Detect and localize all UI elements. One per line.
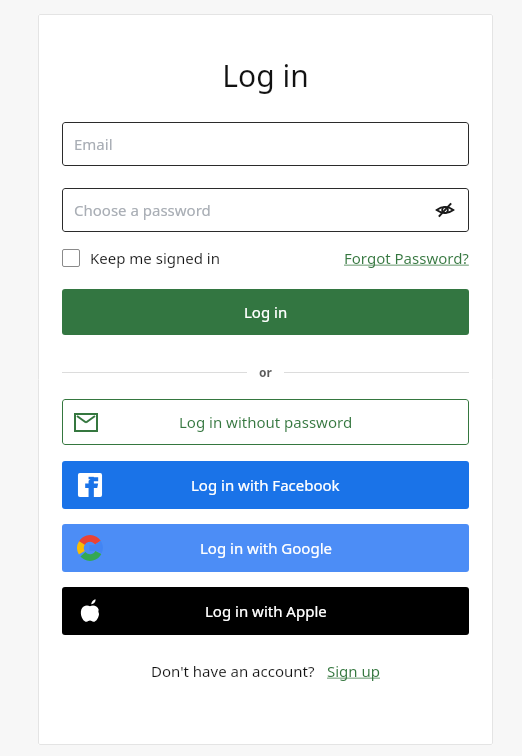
button[interactable]: Choose a password	[62, 188, 469, 232]
staticText: Log in with Google	[200, 538, 332, 558]
staticText: Log in with Apple	[205, 601, 327, 621]
staticText: Log in without password	[179, 412, 353, 432]
staticText: Forgot Password?	[344, 248, 469, 268]
button[interactable]: Log in with Apple	[62, 587, 469, 635]
staticText: Sign up	[327, 661, 380, 681]
button[interactable]: Email	[62, 122, 469, 166]
button[interactable]: Log in with Google	[62, 524, 469, 572]
button[interactable]: Log in	[62, 289, 469, 335]
button[interactable]: Forgot Password?	[344, 248, 469, 268]
button[interactable]: Sign up	[327, 661, 380, 681]
staticText: or	[259, 364, 272, 380]
staticText: Email	[74, 134, 113, 154]
other: Google logo	[76, 534, 104, 562]
staticText: Log in	[38, 55, 493, 96]
staticText: Choose a password	[74, 200, 211, 220]
other: Facebook logo	[76, 471, 104, 499]
staticText: Log in	[244, 302, 288, 322]
button[interactable]: Log in without password	[62, 399, 469, 445]
other: Apple logo	[76, 597, 104, 625]
staticText: Log in with Facebook	[191, 475, 340, 495]
staticText: Don't have an account?	[151, 661, 315, 681]
button[interactable]: Keep me signed in	[62, 248, 224, 268]
button[interactable]: Show password	[433, 198, 457, 222]
button[interactable]: Log in with Facebook	[62, 461, 469, 509]
staticText: Keep me signed in	[90, 248, 220, 268]
